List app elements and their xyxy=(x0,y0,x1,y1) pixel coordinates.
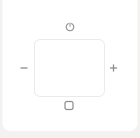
button[interactable]: Power xyxy=(56,15,84,39)
button[interactable]: Volume down xyxy=(12,56,36,80)
button[interactable]: Volume up xyxy=(101,56,125,80)
button[interactable]: Stop xyxy=(56,93,82,117)
